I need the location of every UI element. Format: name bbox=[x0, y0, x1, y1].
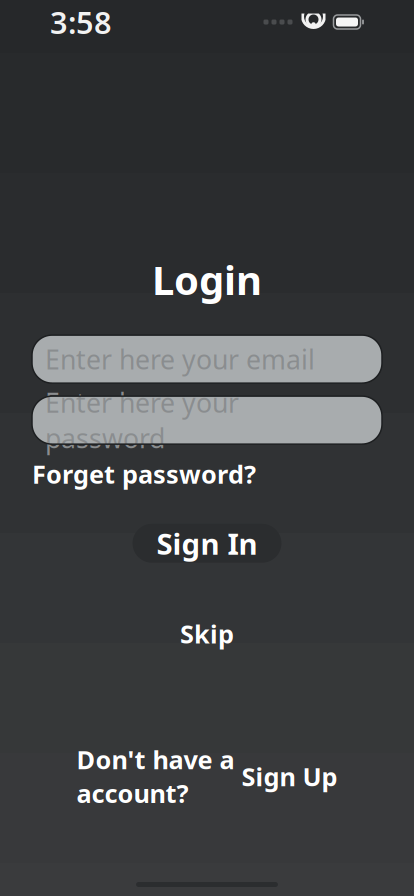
staticText: 3:58 bbox=[50, 2, 112, 42]
staticText: Enter here your password bbox=[45, 385, 239, 455]
button[interactable]: Skip bbox=[32, 621, 382, 647]
staticText: Forget password? bbox=[32, 457, 256, 491]
staticText: Don't have a account? bbox=[76, 743, 234, 810]
button[interactable]: Sign Up bbox=[241, 759, 337, 793]
staticText: Enter here your email bbox=[45, 341, 315, 377]
button[interactable]: Enter here your email bbox=[32, 335, 382, 383]
button[interactable]: Enter here your password bbox=[32, 396, 382, 444]
staticText: Sign Up bbox=[241, 759, 337, 793]
staticText: Login bbox=[152, 253, 262, 306]
staticText: Sign In bbox=[156, 524, 257, 563]
staticText: Skip bbox=[180, 617, 234, 650]
button[interactable]: Forget password? bbox=[32, 457, 382, 491]
button[interactable]: Sign In bbox=[132, 524, 281, 563]
